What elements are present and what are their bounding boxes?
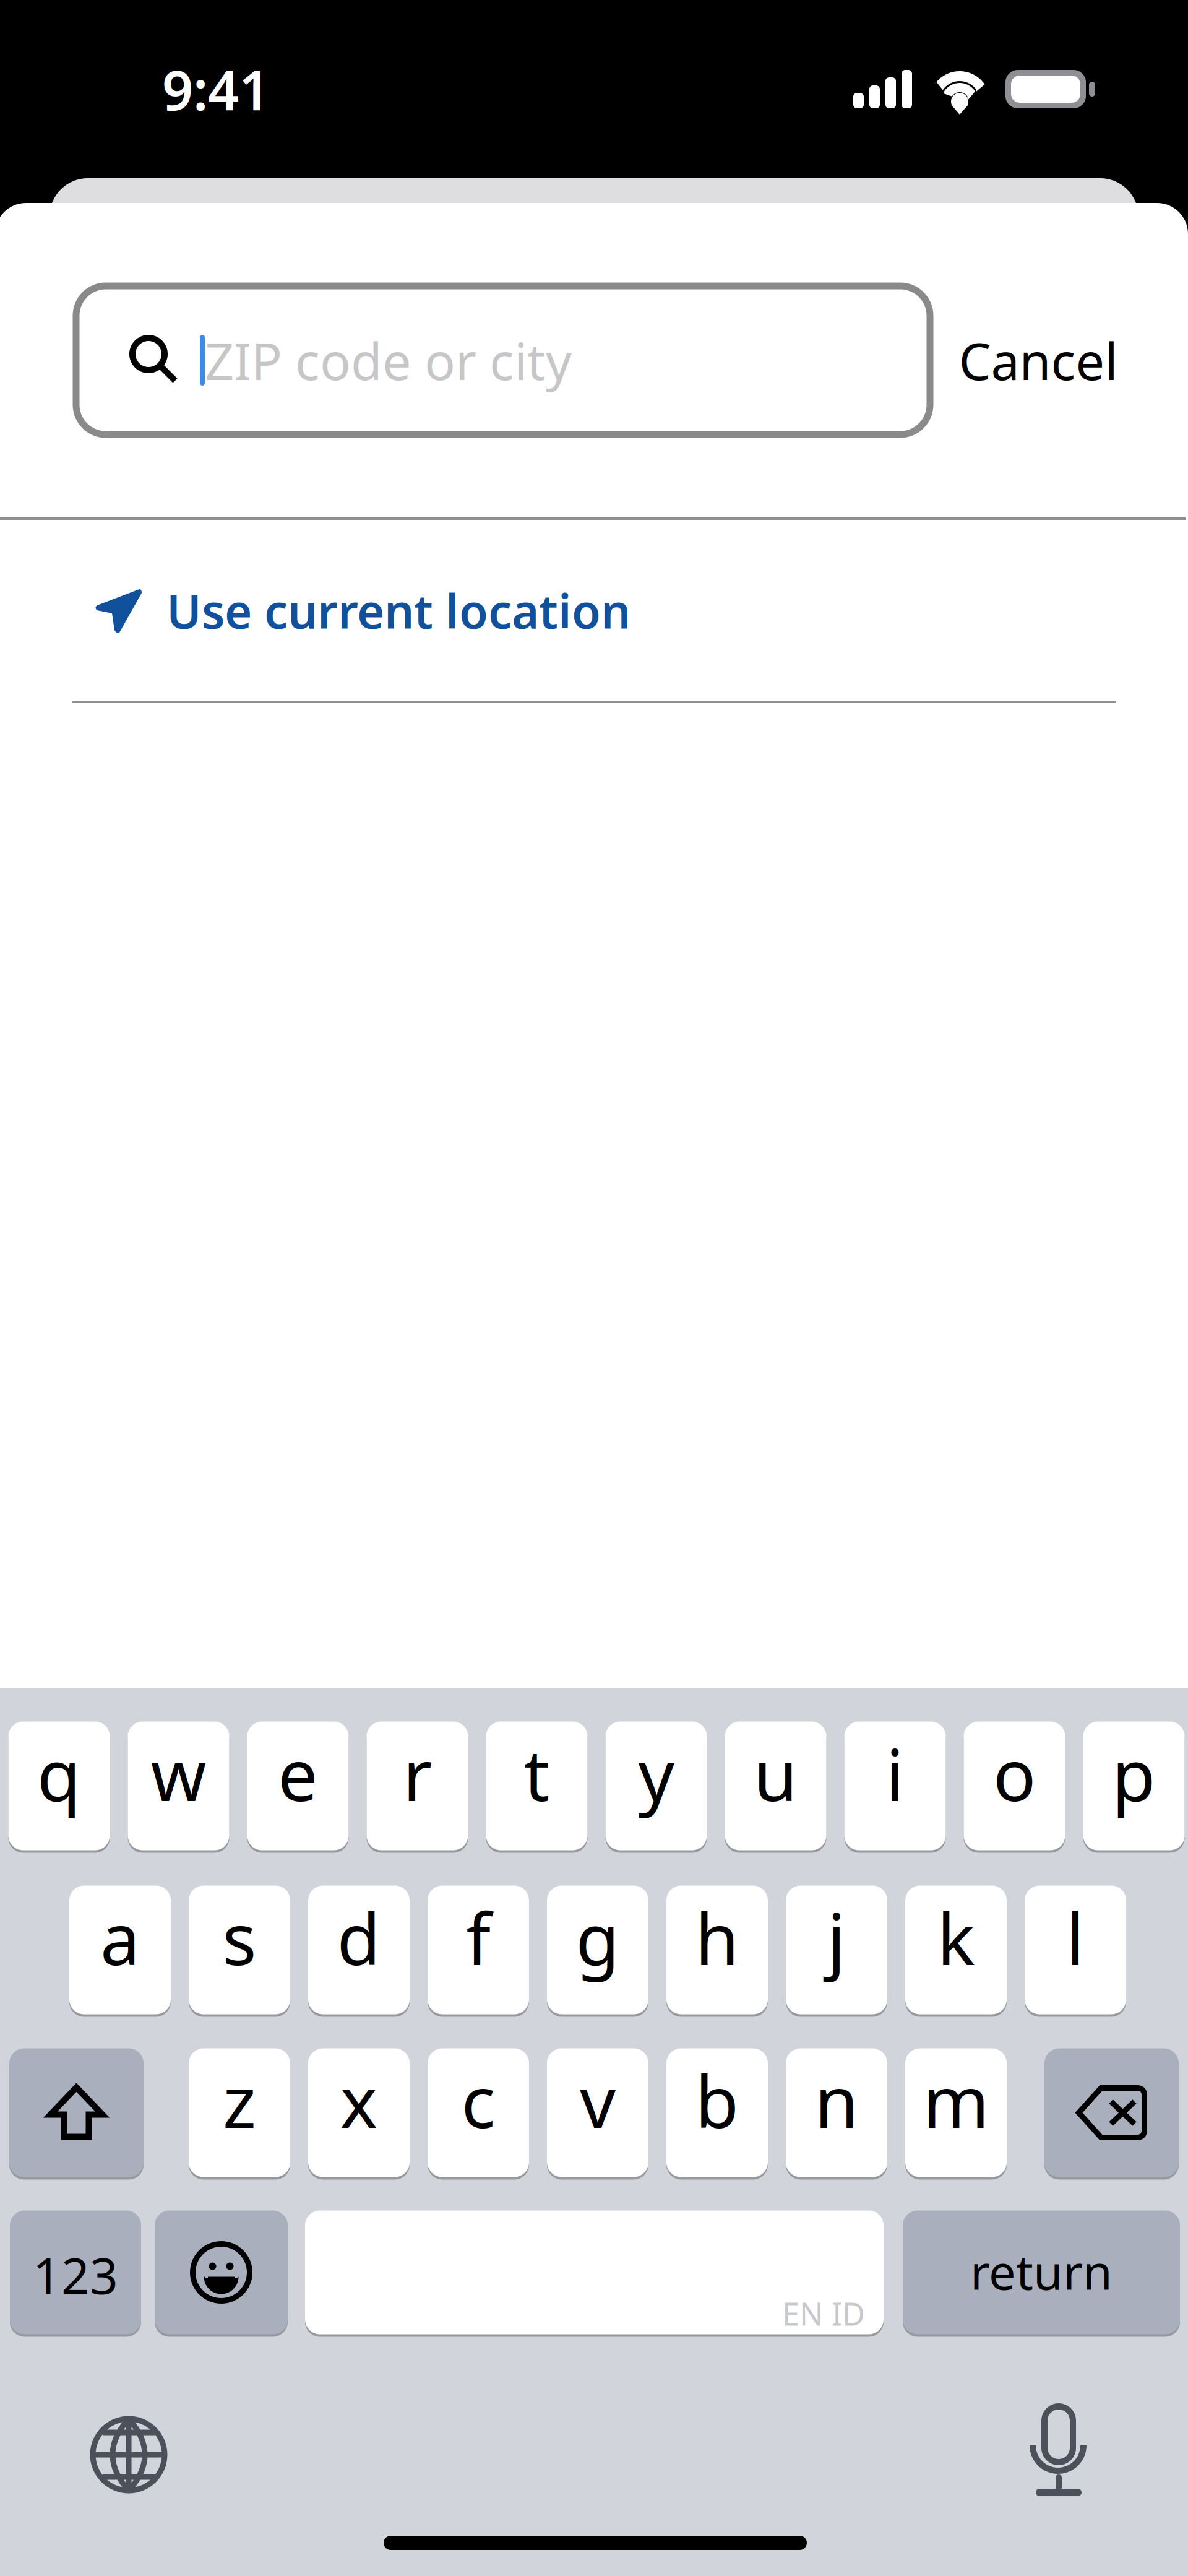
button[interactable]: q	[8, 1720, 110, 1852]
staticText: h	[695, 1890, 739, 1985]
staticText: b	[695, 2053, 739, 2148]
button[interactable]: p	[1083, 1720, 1185, 1852]
staticText: q	[37, 1726, 81, 1821]
staticText: c	[461, 2053, 495, 2148]
button[interactable]: l	[1025, 1884, 1126, 2016]
button[interactable]: b	[666, 2047, 768, 2178]
staticText: m	[923, 2053, 989, 2148]
staticText: g	[576, 1890, 620, 1985]
button[interactable]: Delete	[1044, 2047, 1179, 2178]
button[interactable]: Emoji	[155, 2209, 288, 2336]
staticText: a	[100, 1890, 140, 1985]
staticText: Cancel	[959, 326, 1118, 394]
staticText: k	[937, 1890, 975, 1985]
staticText: e	[278, 1726, 318, 1821]
button[interactable]: y	[605, 1720, 707, 1852]
button[interactable]: n	[786, 2047, 887, 2178]
button[interactable]: m	[905, 2047, 1007, 2178]
staticText: w	[151, 1726, 206, 1821]
staticText: r	[403, 1726, 432, 1821]
staticText: l	[1066, 1890, 1085, 1985]
staticText: t	[524, 1726, 549, 1821]
staticText: s	[222, 1890, 256, 1985]
staticText: x	[340, 2053, 378, 2148]
button[interactable]: k	[905, 1884, 1007, 2016]
button[interactable]: Switch keyboard	[89, 2415, 170, 2496]
staticText: i	[886, 1726, 904, 1821]
staticText: 123	[33, 2242, 118, 2308]
staticText: n	[815, 2053, 859, 2148]
staticText: o	[993, 1726, 1036, 1821]
button[interactable]: u	[725, 1720, 826, 1852]
button[interactable]: w	[128, 1720, 229, 1852]
button[interactable]: d	[308, 1884, 410, 2016]
button[interactable]: t	[486, 1720, 588, 1852]
button[interactable]: a	[69, 1884, 171, 2016]
staticText: y	[638, 1726, 674, 1821]
staticText: Use current location	[166, 579, 631, 641]
button[interactable]: g	[547, 1884, 648, 2016]
button[interactable]: Space	[305, 2209, 884, 2336]
staticText: d	[337, 1890, 381, 1985]
staticText: z	[223, 2053, 256, 2148]
button[interactable]: j	[786, 1884, 887, 2016]
staticText: return	[970, 2239, 1113, 2303]
staticText: u	[754, 1726, 798, 1821]
button[interactable]: s	[189, 1884, 290, 2016]
staticText: j	[827, 1890, 846, 1985]
staticText: ZIP code or city	[205, 326, 572, 394]
button[interactable]: h	[666, 1884, 768, 2016]
button[interactable]: z	[189, 2047, 290, 2178]
button[interactable]: Use current location	[0, 519, 1186, 702]
button[interactable]: c	[428, 2047, 529, 2178]
button[interactable]: r	[367, 1720, 468, 1852]
button[interactable]: f	[428, 1884, 529, 2016]
staticText: p	[1112, 1726, 1156, 1821]
staticText: f	[466, 1890, 490, 1985]
button[interactable]: Shift	[9, 2047, 144, 2178]
button[interactable]: x	[308, 2047, 410, 2178]
button[interactable]: return	[903, 2209, 1180, 2336]
button[interactable]: Cancel	[933, 282, 1143, 438]
button[interactable]: 123	[10, 2209, 141, 2336]
button[interactable]: v	[547, 2047, 648, 2178]
staticText: 9:41	[162, 53, 270, 125]
button[interactable]: o	[964, 1720, 1065, 1852]
button[interactable]: Dictate	[1030, 2408, 1087, 2496]
button[interactable]: e	[247, 1720, 349, 1852]
staticText: EN ID	[782, 2293, 865, 2334]
staticText: v	[580, 2053, 616, 2148]
button[interactable]: i	[844, 1720, 946, 1852]
